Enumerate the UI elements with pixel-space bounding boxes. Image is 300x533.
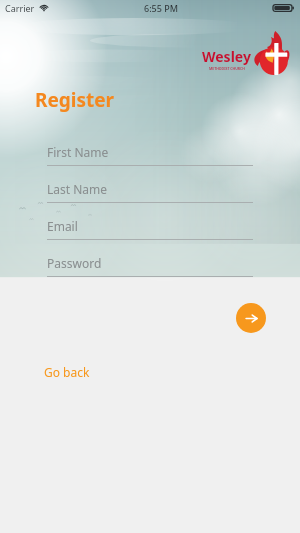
staticText: Go back: [44, 364, 90, 380]
staticText: Email: [47, 218, 78, 234]
staticText: Password: [47, 255, 102, 271]
button[interactable]: Email: [47, 213, 253, 250]
button[interactable]: Last Name: [47, 176, 253, 213]
button[interactable]: First Name: [47, 139, 253, 176]
button[interactable]: Password: [47, 250, 253, 287]
staticText: Register: [35, 87, 115, 113]
staticText: Last Name: [47, 181, 108, 197]
button[interactable]: Submit registration: [236, 303, 266, 333]
staticText: Wesley: [202, 47, 251, 66]
staticText: Carrier: [5, 2, 35, 14]
staticText: METHODIST CHURCH: [209, 66, 245, 71]
staticText: First Name: [47, 144, 109, 160]
staticText: 6:55 PM: [144, 2, 178, 14]
button[interactable]: Go back: [44, 361, 90, 383]
